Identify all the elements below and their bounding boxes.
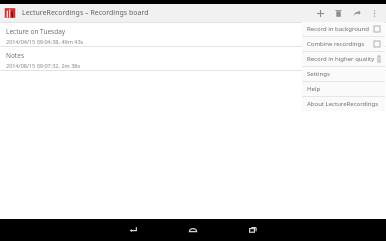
- button[interactable]: More options: [365, 4, 383, 22]
- button[interactable]: Back: [120, 219, 146, 241]
- button[interactable]: Lecture on Tuesday: [0, 23, 386, 46]
- button[interactable]: Recent apps: [240, 219, 266, 241]
- staticText: LectureRecordings – Recordings board: [22, 8, 149, 18]
- staticText: Settings: [307, 70, 330, 78]
- button[interactable]: Notes: [0, 47, 386, 70]
- staticText: Lecture on Tuesday: [6, 27, 66, 36]
- staticText: Help: [307, 85, 321, 93]
- staticText: 2014/08/15 09:07:32, 2m 38s: [6, 62, 81, 69]
- button[interactable]: Delete: [329, 4, 347, 22]
- staticText: 2014/04/15 09:04:38, 49m 43s: [6, 38, 84, 45]
- button[interactable]: Record in higher quality: [302, 52, 385, 66]
- staticText: Record in higher quality: [307, 55, 375, 63]
- button[interactable]: Share: [347, 4, 365, 22]
- staticText: Combine recordings: [307, 40, 365, 48]
- staticText: About LectureRecordings: [307, 100, 379, 108]
- button[interactable]: Settings: [302, 67, 385, 81]
- button[interactable]: About LectureRecordings: [302, 97, 385, 111]
- button[interactable]: Record in background: [302, 22, 385, 36]
- button[interactable]: Add recording: [311, 4, 329, 22]
- staticText: Notes: [6, 51, 24, 60]
- button[interactable]: Home: [180, 219, 206, 241]
- button[interactable]: Combine recordings: [302, 37, 385, 51]
- staticText: Record in background: [307, 25, 369, 33]
- button[interactable]: Help: [302, 82, 385, 96]
